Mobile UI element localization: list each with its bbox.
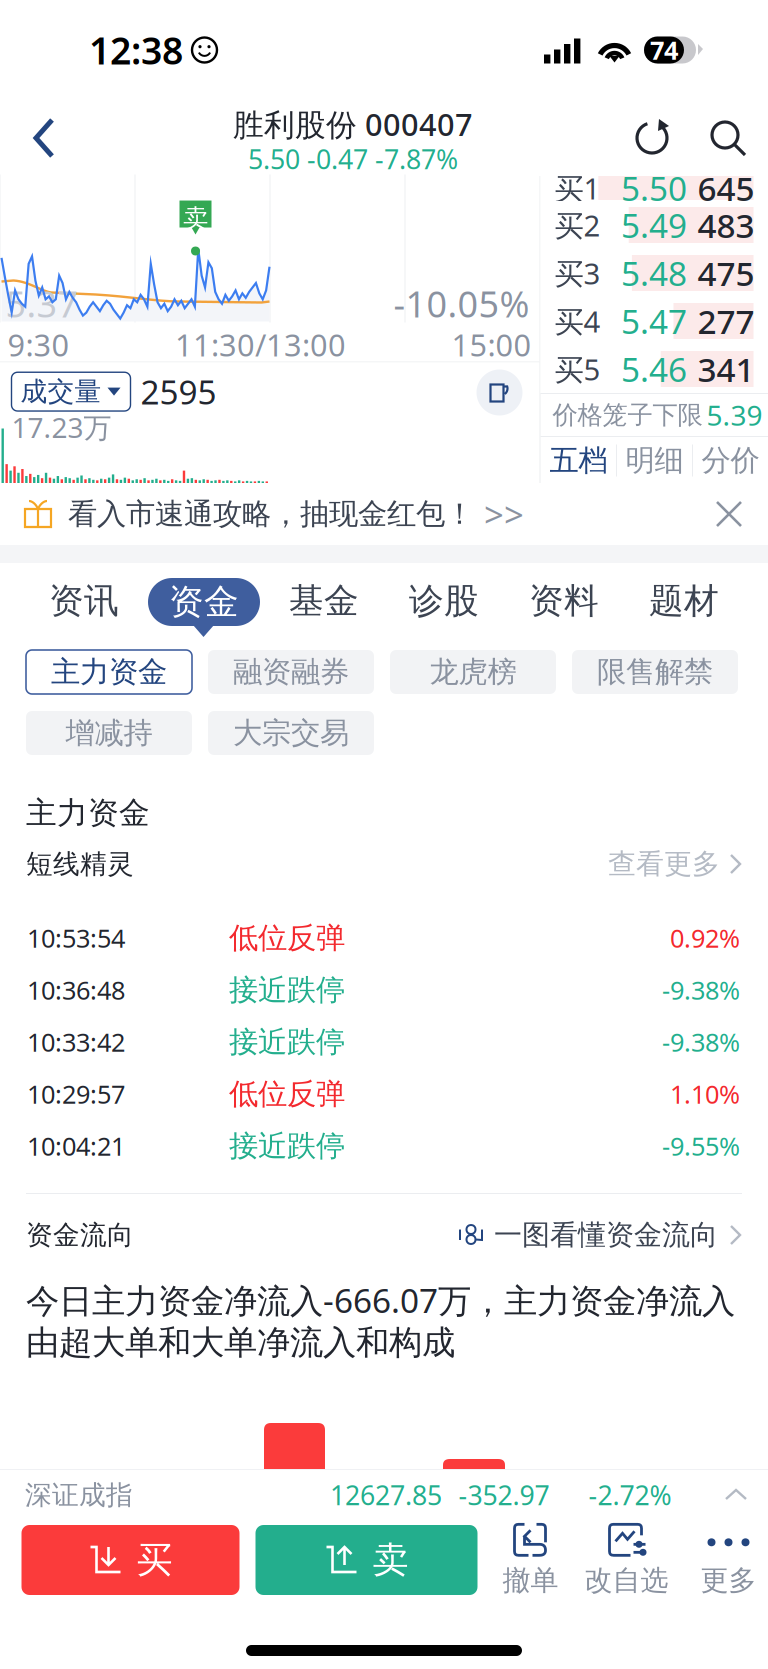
staticText: 买4 — [554, 301, 600, 340]
button[interactable]: 资讯 — [24, 563, 144, 650]
staticText: -2.72% — [588, 1477, 671, 1513]
staticText: 深证成指 — [25, 1479, 133, 1511]
button[interactable]: 卖 — [255, 1525, 477, 1595]
button[interactable]: Search — [688, 100, 768, 176]
staticText: 10:33:42 — [27, 1025, 125, 1059]
staticText: 5.47 — [621, 299, 687, 343]
staticText: 645 — [697, 166, 754, 210]
staticText: 增减持 — [65, 715, 152, 751]
staticText: 15:00 — [451, 324, 531, 365]
staticText: 题材 — [649, 580, 719, 622]
staticText: 基金 — [289, 580, 359, 622]
button[interactable]: 题材 — [624, 563, 744, 650]
staticText: 成交量 — [20, 375, 101, 408]
staticText: 5.39 — [706, 396, 762, 434]
staticText: 483 — [697, 203, 754, 247]
button[interactable]: 限售解禁 — [572, 650, 738, 694]
staticText: -9.38% — [662, 973, 740, 1007]
staticText: 5.46 — [621, 347, 687, 391]
staticText: 龙虎榜 — [429, 654, 516, 690]
button[interactable]: 改自选 — [581, 1520, 671, 1600]
staticText: 2595 — [140, 369, 216, 414]
button[interactable]: 融资融券 — [208, 650, 374, 694]
staticText: 接近跌停 — [229, 972, 345, 1008]
staticText: 9:30 — [7, 324, 69, 365]
button[interactable]: 大宗交易 — [208, 711, 374, 755]
staticText: -9.55% — [662, 1129, 740, 1163]
staticText: 17.23万 — [11, 408, 111, 446]
button[interactable]: 撤单 — [485, 1520, 575, 1600]
button[interactable]: Close — [696, 483, 762, 545]
staticText: 价格笼子下限 — [552, 399, 702, 430]
staticText: 撤单 — [502, 1563, 558, 1598]
staticText: 5.50 -0.47 -7.87% — [248, 141, 458, 177]
staticText: 10:36:48 — [27, 973, 125, 1007]
button[interactable]: Refresh — [616, 100, 688, 176]
staticText: 74 — [650, 33, 678, 67]
button[interactable]: 增减持 — [26, 711, 192, 755]
staticText: 资金 — [169, 581, 239, 623]
button[interactable]: 分价 — [693, 437, 768, 484]
button[interactable]: 诊股 — [384, 563, 504, 650]
staticText: 今日主力资金净流入-666.07万，主力资金净流入由超大单和大单净流入和构成 — [26, 1278, 735, 1363]
staticText: 12:38 — [89, 25, 183, 75]
button[interactable]: 更多 — [683, 1520, 768, 1600]
staticText: -10.05% — [393, 280, 529, 327]
button[interactable]: 五档 — [541, 437, 616, 484]
button[interactable]: 成交量 — [11, 372, 130, 411]
staticText: >> — [484, 491, 524, 537]
staticText: 主力资金 — [51, 654, 167, 690]
staticText: 买 — [136, 1538, 172, 1582]
staticText: 277 — [697, 299, 754, 343]
staticText: 10:53:54 — [27, 921, 125, 955]
staticText: 融资融券 — [233, 654, 349, 690]
staticText: 短线精灵 — [26, 848, 134, 880]
staticText: 5.49 — [621, 203, 687, 247]
button[interactable]: 查看更多 — [608, 844, 742, 884]
button[interactable]: 资金 — [144, 563, 264, 650]
staticText: 低位反弹 — [229, 1076, 345, 1112]
staticText: -352.97 — [458, 1477, 549, 1513]
button[interactable]: Back — [0, 100, 90, 176]
button[interactable]: Expand — [714, 1470, 758, 1520]
staticText: 大宗交易 — [233, 715, 349, 751]
staticText: 接近跌停 — [229, 1128, 345, 1164]
staticText: 接近跌停 — [229, 1024, 345, 1060]
staticText: 5.37 — [5, 280, 78, 327]
staticText: 买5 — [554, 349, 600, 388]
staticText: 341 — [697, 347, 754, 391]
staticText: 0.92% — [670, 921, 740, 955]
button[interactable]: 主力资金 — [26, 650, 192, 694]
staticText: 买3 — [554, 253, 600, 292]
button[interactable]: Rotate chart — [473, 366, 525, 418]
staticText: 卖 — [183, 203, 208, 234]
staticText: 改自选 — [584, 1563, 668, 1598]
staticText: 买2 — [554, 205, 600, 244]
staticText: 475 — [697, 251, 754, 295]
staticText: 主力资金 — [26, 794, 150, 832]
button[interactable]: 基金 — [264, 563, 384, 650]
staticText: 低位反弹 — [229, 920, 345, 956]
staticText: 11:30/13:00 — [175, 324, 346, 365]
button[interactable]: 明细 — [617, 437, 692, 484]
button[interactable]: 资料 — [504, 563, 624, 650]
staticText: 5.48 — [621, 251, 687, 295]
staticText: 更多 — [700, 1563, 756, 1598]
staticText: 诊股 — [409, 580, 479, 622]
staticText: 资料 — [529, 580, 599, 622]
staticText: -9.38% — [662, 1025, 740, 1059]
button[interactable]: 一图看懂资金流向 — [458, 1214, 742, 1256]
staticText: 查看更多 — [608, 847, 720, 881]
staticText: 一图看懂资金流向 — [494, 1218, 718, 1252]
staticText: 分价 — [701, 442, 759, 478]
staticText: 5.50 — [621, 166, 687, 210]
staticText: 10:04:21 — [27, 1129, 125, 1163]
staticText: 明细 — [625, 442, 683, 478]
button[interactable]: 买 — [21, 1525, 239, 1595]
staticText: 限售解禁 — [597, 654, 713, 690]
staticText: 看入市速通攻略，抽现金红包！ — [68, 496, 474, 532]
button[interactable]: 龙虎榜 — [390, 650, 556, 694]
staticText: 资金流向 — [26, 1219, 134, 1251]
staticText: 资讯 — [49, 580, 119, 622]
staticText: 10:29:57 — [27, 1077, 125, 1111]
